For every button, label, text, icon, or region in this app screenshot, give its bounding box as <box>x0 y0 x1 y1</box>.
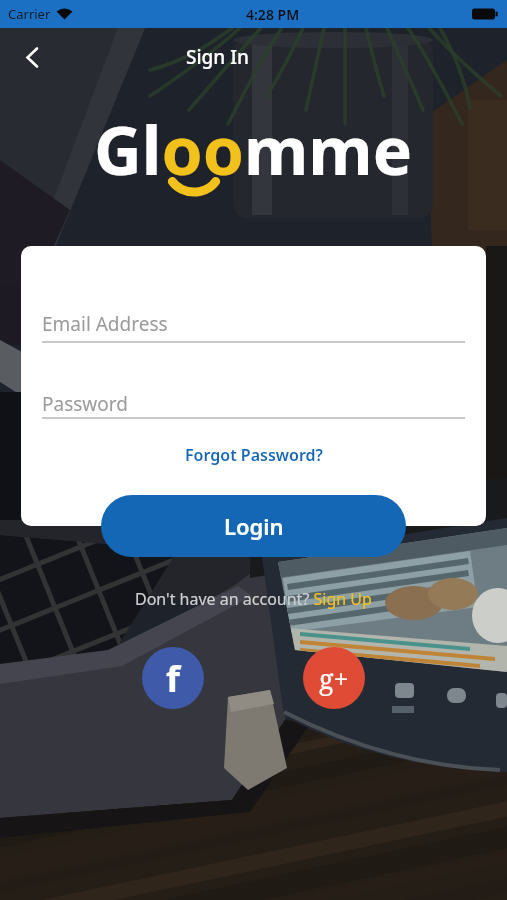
staticText: f <box>166 654 180 703</box>
staticText: Password <box>42 391 128 417</box>
staticText: g+ <box>319 660 349 697</box>
button[interactable]: Password <box>42 391 486 431</box>
staticText: Gloomme <box>94 104 413 194</box>
staticText: Sign In <box>186 44 249 70</box>
button[interactable]: Login <box>101 495 406 557</box>
staticText: Carrier <box>8 5 51 23</box>
button[interactable]: Email Address <box>42 311 486 351</box>
button[interactable]: f <box>142 647 204 709</box>
staticText: 4:28 PM <box>246 5 300 24</box>
staticText: Login <box>224 511 284 541</box>
staticText: Email Address <box>42 311 168 337</box>
button[interactable] <box>14 40 50 74</box>
button[interactable]: Forgot Password? <box>185 444 323 466</box>
button[interactable]: Don't have an account? Sign Up <box>135 588 372 610</box>
button[interactable]: g+ <box>303 647 365 709</box>
